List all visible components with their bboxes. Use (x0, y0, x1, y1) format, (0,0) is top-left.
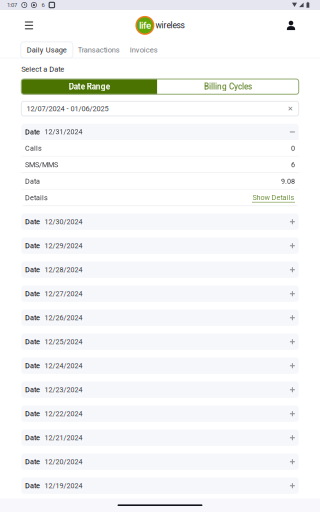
staticText: 12/23/2024 (45, 386, 83, 394)
staticText: wireless (156, 20, 185, 30)
staticText: Daily Usage (27, 46, 67, 54)
staticText: 12/25/2024 (45, 338, 83, 346)
staticText: 12/21/2024 (45, 434, 83, 442)
button[interactable]: Date (21, 429, 299, 446)
staticText: Date (25, 289, 40, 298)
staticText: 12/31/2024 (45, 128, 83, 136)
staticText: Date (25, 457, 40, 466)
staticText: 9.08 (281, 177, 295, 186)
staticText: Date (25, 313, 40, 322)
staticText: 12/27/2024 (45, 290, 83, 298)
staticText: Show Details (252, 193, 294, 202)
staticText: 12/20/2024 (45, 458, 83, 466)
button[interactable]: Date (21, 237, 299, 254)
staticText: 12/19/2024 (45, 482, 83, 490)
staticText: 12/07/2024 - 01/06/2025 (26, 104, 108, 113)
button[interactable]: Date (21, 357, 299, 374)
button[interactable]: Date (21, 124, 299, 140)
staticText: 12/28/2024 (45, 266, 83, 274)
button[interactable]: Account (280, 11, 302, 39)
staticText: Date (25, 265, 40, 274)
staticText: Calls (25, 144, 42, 153)
staticText: 12/26/2024 (45, 314, 83, 322)
staticText: Date (25, 409, 40, 418)
staticText: Date (25, 481, 40, 490)
button[interactable]: Invoices (125, 42, 163, 58)
staticText: Date (25, 433, 40, 442)
button[interactable]: Date (21, 213, 299, 230)
button[interactable]: Date (21, 285, 299, 302)
button[interactable]: Date (21, 261, 299, 278)
staticText: 6 (42, 2, 45, 8)
button[interactable]: Transactions (73, 42, 125, 58)
staticText: SMS/MMS (25, 161, 58, 169)
staticText: 12/22/2024 (45, 410, 83, 418)
staticText: Transactions (78, 46, 120, 54)
staticText: Date (25, 385, 40, 394)
staticText: Data (25, 177, 40, 186)
staticText: Billing Cycles (204, 82, 252, 91)
staticText: 12/24/2024 (45, 362, 83, 370)
button[interactable]: Date (21, 309, 299, 326)
button[interactable]: Daily Usage (21, 42, 73, 58)
button[interactable]: Billing Cycles (157, 79, 299, 94)
staticText: 12/30/2024 (45, 218, 83, 226)
staticText: Date (25, 241, 40, 250)
staticText: Date (25, 361, 40, 370)
staticText: Invoices (130, 46, 158, 54)
button[interactable]: Date (21, 381, 299, 398)
staticText: Select a Date (21, 65, 64, 74)
staticText: Date (25, 128, 40, 136)
staticText: Date (25, 217, 40, 226)
button[interactable]: Show Details (252, 193, 295, 202)
staticText: 6 (291, 161, 295, 169)
staticText: 0 (291, 144, 295, 153)
staticText: ✕ (288, 105, 294, 113)
staticText: life (139, 20, 151, 31)
staticText: Date (25, 337, 40, 346)
button[interactable]: Menu (18, 11, 40, 39)
button[interactable]: Date Range (21, 79, 157, 94)
staticText: Details (25, 194, 48, 202)
button[interactable]: Date (21, 405, 299, 422)
button[interactable]: Date (21, 477, 299, 494)
staticText: 12/29/2024 (45, 242, 83, 250)
button[interactable]: Date (21, 333, 299, 350)
button[interactable]: Date (21, 453, 299, 470)
staticText: 1:07 (7, 2, 17, 8)
staticText: Date Range (69, 82, 110, 91)
